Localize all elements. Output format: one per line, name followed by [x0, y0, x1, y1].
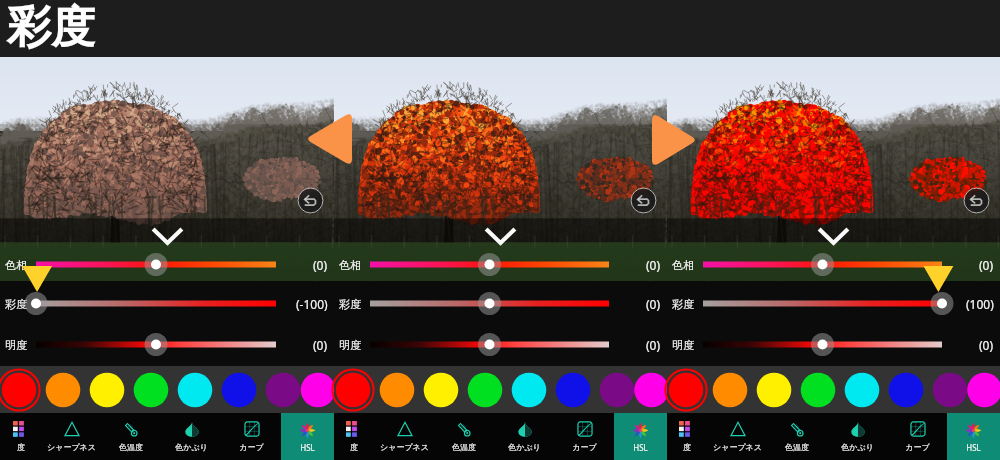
button[interactable]: Colour 5 — [217, 368, 261, 412]
button[interactable] — [36, 254, 276, 275]
staticText: 度 — [683, 442, 691, 452]
button[interactable]: Colour 2 — [85, 368, 129, 412]
staticText: 色温度 — [452, 442, 476, 452]
staticText: HSL — [966, 442, 981, 453]
staticText: (0) — [646, 337, 661, 353]
button[interactable]: カーブ — [554, 413, 614, 460]
staticText: 色相 — [672, 258, 694, 272]
button[interactable]: Undo — [297, 187, 324, 214]
button[interactable]: Colour 5 — [884, 368, 928, 412]
button[interactable]: Colour 0 — [0, 368, 41, 412]
button[interactable]: 度 — [334, 413, 374, 460]
staticText: 色かぶり — [841, 442, 874, 452]
button[interactable]: 色温度 — [434, 413, 494, 460]
button[interactable]: 度 — [667, 413, 707, 460]
button[interactable] — [703, 254, 942, 275]
button[interactable]: Colour 4 — [840, 368, 884, 412]
button[interactable]: Colour 3 — [463, 368, 507, 412]
button[interactable]: Colour 2 — [419, 368, 463, 412]
button[interactable]: Collapse panel — [151, 227, 184, 245]
button[interactable]: Colour 0 — [664, 368, 708, 412]
button[interactable]: Colour 5 — [551, 368, 595, 412]
staticText: 明度 — [339, 338, 361, 352]
button[interactable]: 度 — [0, 413, 41, 460]
button[interactable]: HSL — [614, 413, 667, 460]
button[interactable]: シャープネス — [374, 413, 434, 460]
button[interactable]: Colour 2 — [752, 368, 796, 412]
button[interactable] — [703, 334, 942, 355]
staticText: (0) — [313, 337, 328, 353]
button[interactable]: Colour 1 — [41, 368, 85, 412]
staticText: 度 — [17, 442, 25, 452]
button[interactable] — [370, 254, 609, 275]
button[interactable] — [703, 293, 942, 314]
staticText: (0) — [646, 257, 661, 273]
button[interactable]: Colour 7 — [972, 368, 997, 412]
button[interactable]: Colour 4 — [173, 368, 217, 412]
staticText: (0) — [979, 257, 994, 273]
button[interactable]: HSL — [281, 413, 334, 460]
button[interactable]: Colour 1 — [708, 368, 752, 412]
button[interactable]: Colour 7 — [305, 368, 331, 412]
staticText: シャープネス — [47, 442, 96, 452]
staticText: 彩度 — [7, 0, 95, 55]
button[interactable]: Collapse panel — [817, 227, 850, 245]
button[interactable]: Undo — [630, 187, 657, 214]
button[interactable]: カーブ — [887, 413, 947, 460]
staticText: (-100) — [296, 296, 328, 312]
button[interactable]: 色かぶり — [494, 413, 554, 460]
button[interactable]: Colour 6 — [928, 368, 972, 412]
staticText: 色温度 — [785, 442, 809, 452]
button[interactable]: 色温度 — [767, 413, 827, 460]
staticText: (100) — [966, 296, 994, 312]
button[interactable]: シャープネス — [707, 413, 767, 460]
staticText: HSL — [633, 442, 648, 453]
button[interactable]: Colour 0 — [331, 368, 375, 412]
button[interactable] — [36, 293, 276, 314]
button[interactable]: Colour 7 — [639, 368, 664, 412]
button[interactable] — [36, 334, 276, 355]
button[interactable]: カーブ — [221, 413, 281, 460]
staticText: 色温度 — [119, 442, 143, 452]
button[interactable]: Colour 3 — [129, 368, 173, 412]
staticText: カーブ — [572, 442, 597, 452]
staticText: シャープネス — [713, 442, 762, 452]
staticText: (0) — [646, 296, 661, 312]
button[interactable]: Colour 6 — [261, 368, 305, 412]
button[interactable]: シャープネス — [41, 413, 101, 460]
button[interactable]: 色温度 — [101, 413, 161, 460]
button[interactable]: Colour 3 — [796, 368, 840, 412]
staticText: 色かぶり — [508, 442, 541, 452]
button[interactable]: Colour 6 — [595, 368, 639, 412]
button[interactable]: Collapse panel — [484, 227, 517, 245]
staticText: シャープネス — [380, 442, 429, 452]
button[interactable]: 色かぶり — [161, 413, 221, 460]
staticText: 彩度 — [5, 297, 27, 311]
button[interactable] — [370, 334, 609, 355]
staticText: HSL — [300, 442, 315, 453]
staticText: (0) — [313, 257, 328, 273]
staticText: 色かぶり — [175, 442, 208, 452]
staticText: 彩度 — [672, 297, 694, 311]
staticText: カーブ — [239, 442, 264, 452]
button[interactable]: Undo — [963, 187, 990, 214]
staticText: カーブ — [905, 442, 930, 452]
button[interactable]: HSL — [947, 413, 1000, 460]
staticText: (0) — [979, 337, 994, 353]
staticText: 彩度 — [339, 297, 361, 311]
staticText: 明度 — [672, 338, 694, 352]
staticText: 色相 — [339, 258, 361, 272]
button[interactable]: Colour 4 — [507, 368, 551, 412]
staticText: 明度 — [5, 338, 27, 352]
button[interactable] — [370, 293, 609, 314]
staticText: 色相 — [5, 258, 27, 272]
staticText: 度 — [350, 442, 358, 452]
button[interactable]: 色かぶり — [827, 413, 887, 460]
button[interactable]: Colour 1 — [375, 368, 419, 412]
